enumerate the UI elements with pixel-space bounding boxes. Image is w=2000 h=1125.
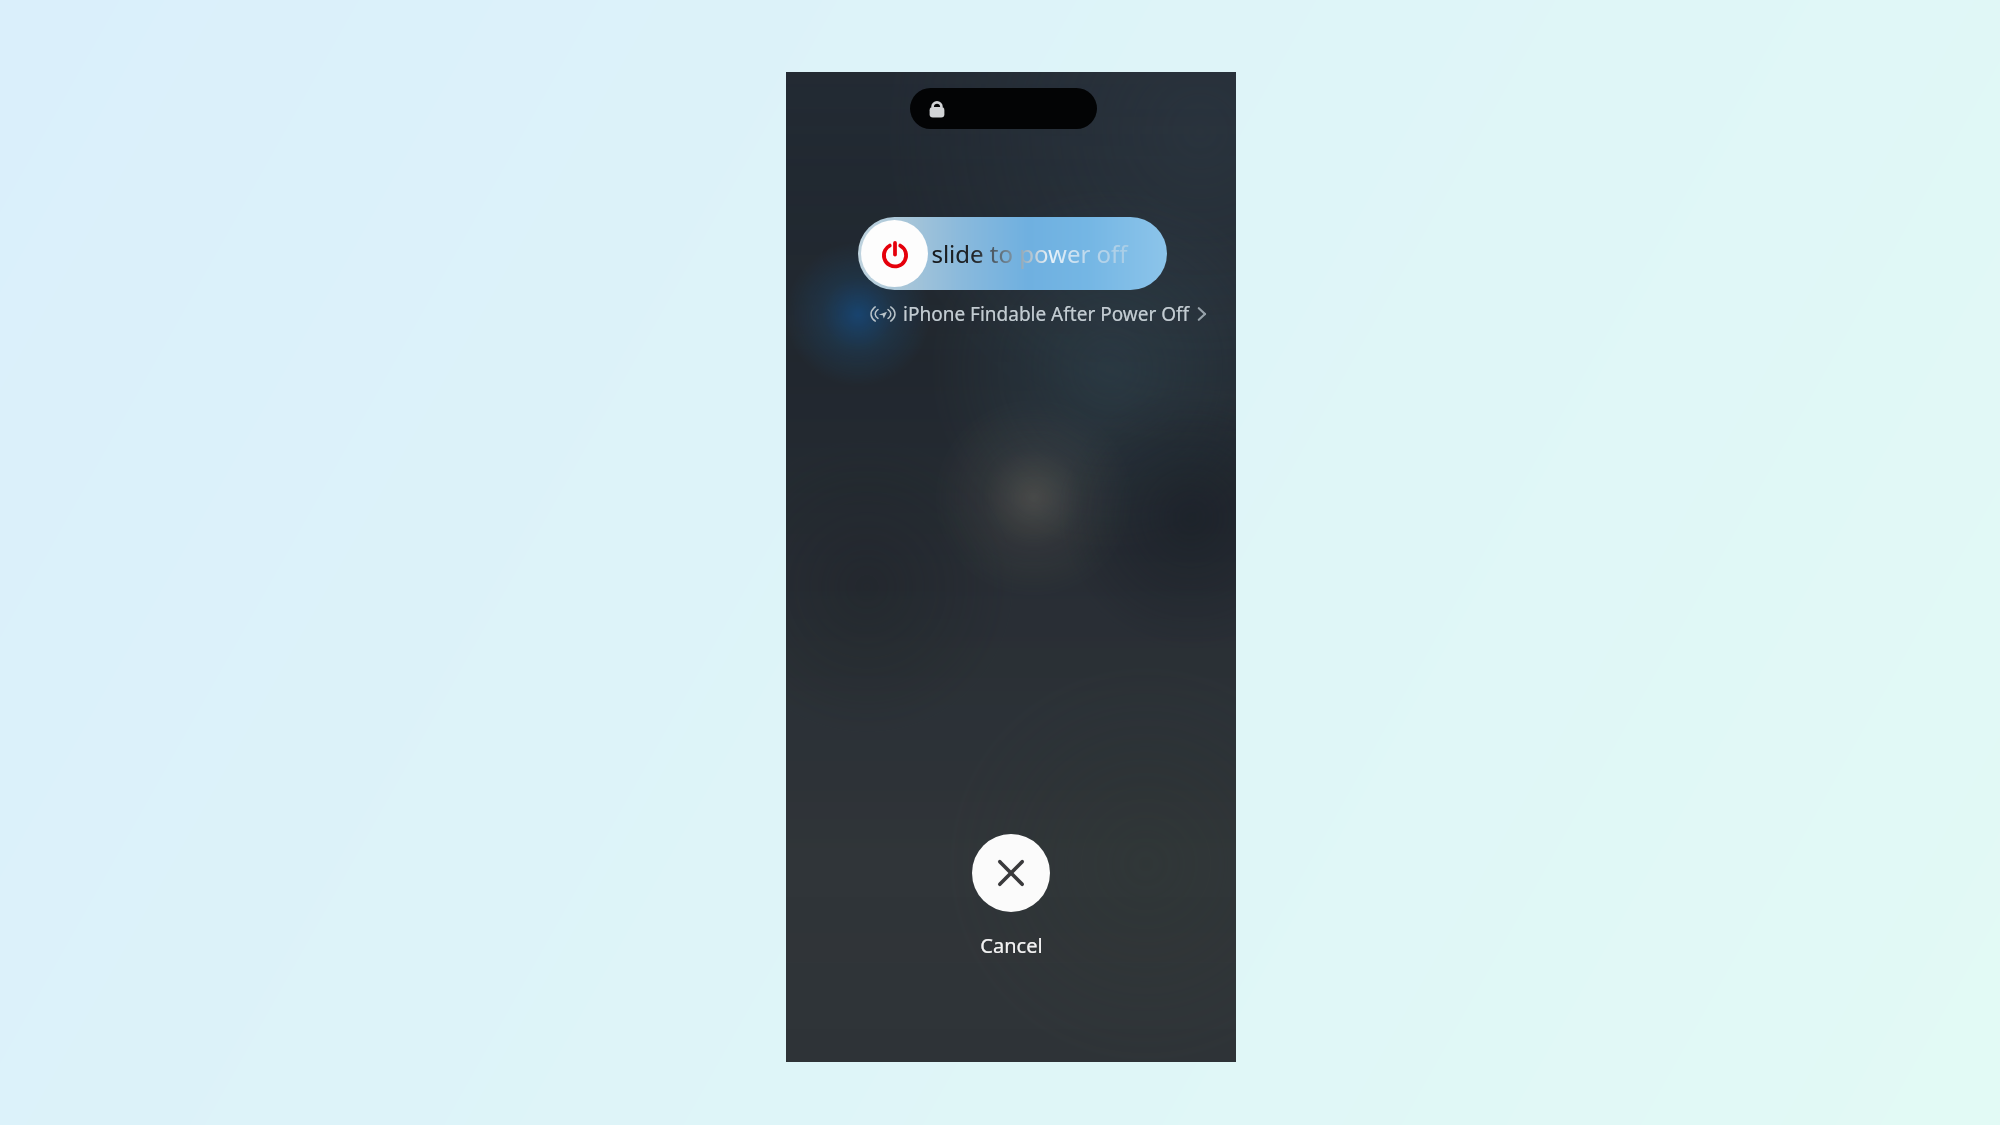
button[interactable]: slide to power off [858,217,1167,290]
button[interactable]: iPhone Findable After Power Off [870,300,1207,328]
staticText: slide to power off [931,237,1128,270]
button[interactable]: Cancel [972,834,1050,912]
staticText: Cancel [980,932,1043,959]
button[interactable]: Power off [861,220,928,287]
staticText: iPhone Findable After Power Off [903,301,1190,327]
